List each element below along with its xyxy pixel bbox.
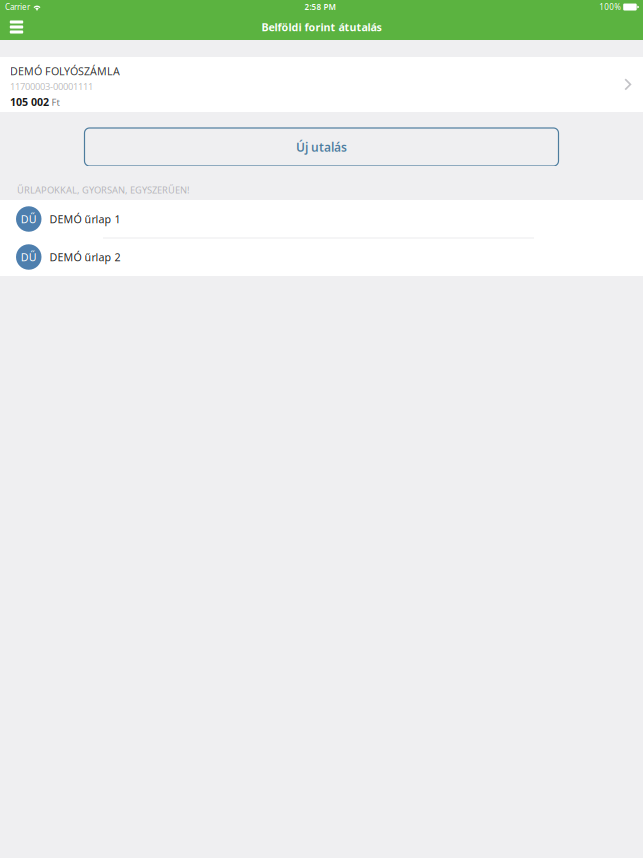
button[interactable]: DEMÓ FOLYÓSZÁMLA <box>0 57 643 112</box>
button[interactable]: DŰ <box>0 238 643 276</box>
staticText: DŰ <box>21 250 37 264</box>
button[interactable]: DŰ <box>0 200 643 238</box>
staticText: DŰ <box>21 212 37 226</box>
staticText: 11700003-00001111 <box>10 80 93 93</box>
staticText: DEMÓ űrlap 2 <box>49 250 120 264</box>
staticText: Ft <box>51 96 59 108</box>
staticText: Új utalás <box>296 139 347 155</box>
staticText: 2:58 PM <box>305 2 336 12</box>
staticText: Belföldi forint átutalás <box>261 20 381 34</box>
staticText: Carrier <box>5 2 30 12</box>
staticText: 100% <box>599 2 621 12</box>
staticText: 105 002 <box>10 95 49 109</box>
staticText: ŰRLAPOKKAL, GYORSAN, EGYSZERŰEN! <box>17 184 190 196</box>
staticText: DEMÓ FOLYÓSZÁMLA <box>10 64 120 78</box>
staticText: DEMÓ űrlap 1 <box>49 212 120 226</box>
button[interactable]: Új utalás <box>84 128 558 166</box>
button[interactable]: Menu <box>2 14 31 40</box>
